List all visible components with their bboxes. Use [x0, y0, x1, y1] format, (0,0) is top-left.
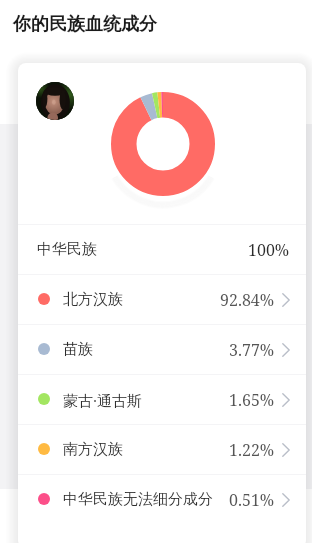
button[interactable]: 苗族 — [18, 325, 306, 374]
button[interactable]: 中华民族无法细分成分 — [18, 475, 306, 524]
staticText: 蒙古·通古斯 — [63, 390, 143, 410]
staticText: 中华民族无法细分成分 — [63, 490, 213, 509]
staticText: 南方汉族 — [63, 440, 123, 459]
staticText: 0.51% — [229, 489, 275, 511]
staticText: 92.84% — [220, 289, 275, 311]
button[interactable]: 蒙古·通古斯 — [18, 375, 306, 424]
staticText: 你的民族血统成分 — [13, 13, 157, 36]
staticText: 3.77% — [229, 339, 275, 361]
staticText: 中华民族 — [37, 240, 97, 259]
staticText: 1.22% — [229, 439, 275, 461]
button[interactable]: 南方汉族 — [18, 425, 306, 474]
staticText: 100% — [248, 239, 290, 261]
staticText: 1.65% — [229, 389, 275, 411]
button[interactable]: 北方汉族 — [18, 275, 306, 324]
staticText: 北方汉族 — [63, 290, 123, 309]
button[interactable]: Profile photo — [36, 82, 74, 120]
staticText: 苗族 — [63, 340, 93, 359]
button[interactable]: 中华民族 — [18, 225, 306, 274]
